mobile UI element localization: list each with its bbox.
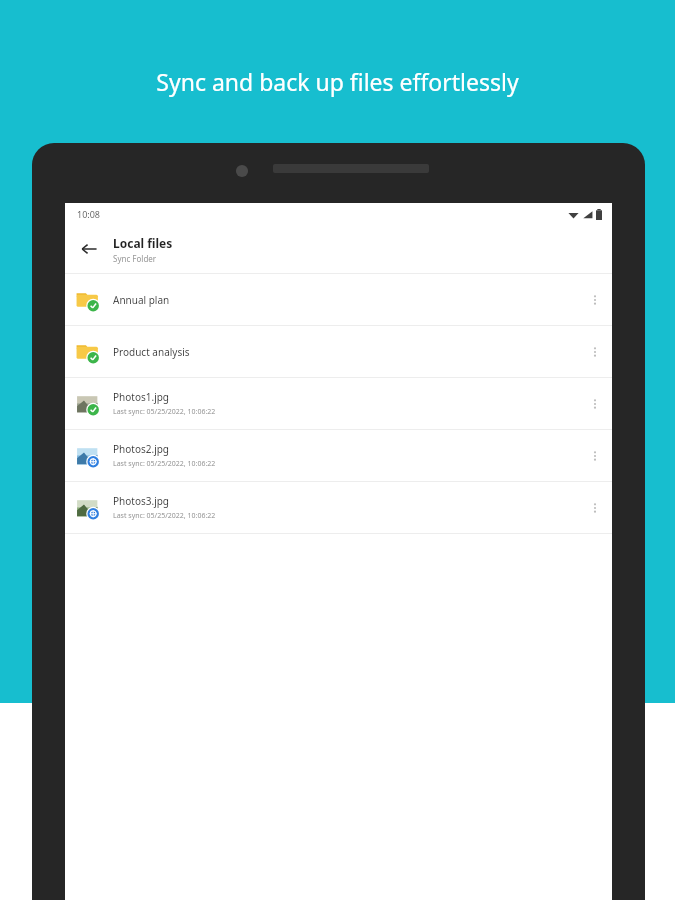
staticText: Last sync: 05/25/2022, 10:06:22 — [113, 511, 216, 521]
staticText: Sync and back up files effortlessly — [156, 66, 519, 97]
staticText: Photos2.jpg — [113, 442, 170, 456]
staticText: Local files — [113, 235, 173, 251]
staticText: Last sync: 05/25/2022, 10:06:22 — [113, 407, 216, 417]
staticText: Photos1.jpg — [113, 390, 170, 404]
button[interactable]: Photos1.jpg — [65, 378, 612, 429]
button[interactable]: More options — [578, 274, 612, 325]
button[interactable]: Photos3.jpg — [65, 482, 612, 533]
button[interactable]: More options — [578, 326, 612, 377]
staticText: Annual plan — [113, 293, 170, 307]
button[interactable]: Back — [65, 225, 113, 273]
button[interactable]: Product analysis — [65, 326, 612, 377]
button[interactable]: More options — [578, 482, 612, 533]
staticText: Sync Folder — [113, 253, 157, 264]
staticText: 10:08 — [77, 208, 101, 220]
button[interactable]: More options — [578, 378, 612, 429]
staticText: Last sync: 05/25/2022, 10:06:22 — [113, 459, 216, 469]
button[interactable]: More options — [578, 430, 612, 481]
button[interactable]: Annual plan — [65, 274, 612, 325]
staticText: Product analysis — [113, 345, 190, 359]
staticText: Photos3.jpg — [113, 494, 170, 508]
button[interactable]: Photos2.jpg — [65, 430, 612, 481]
